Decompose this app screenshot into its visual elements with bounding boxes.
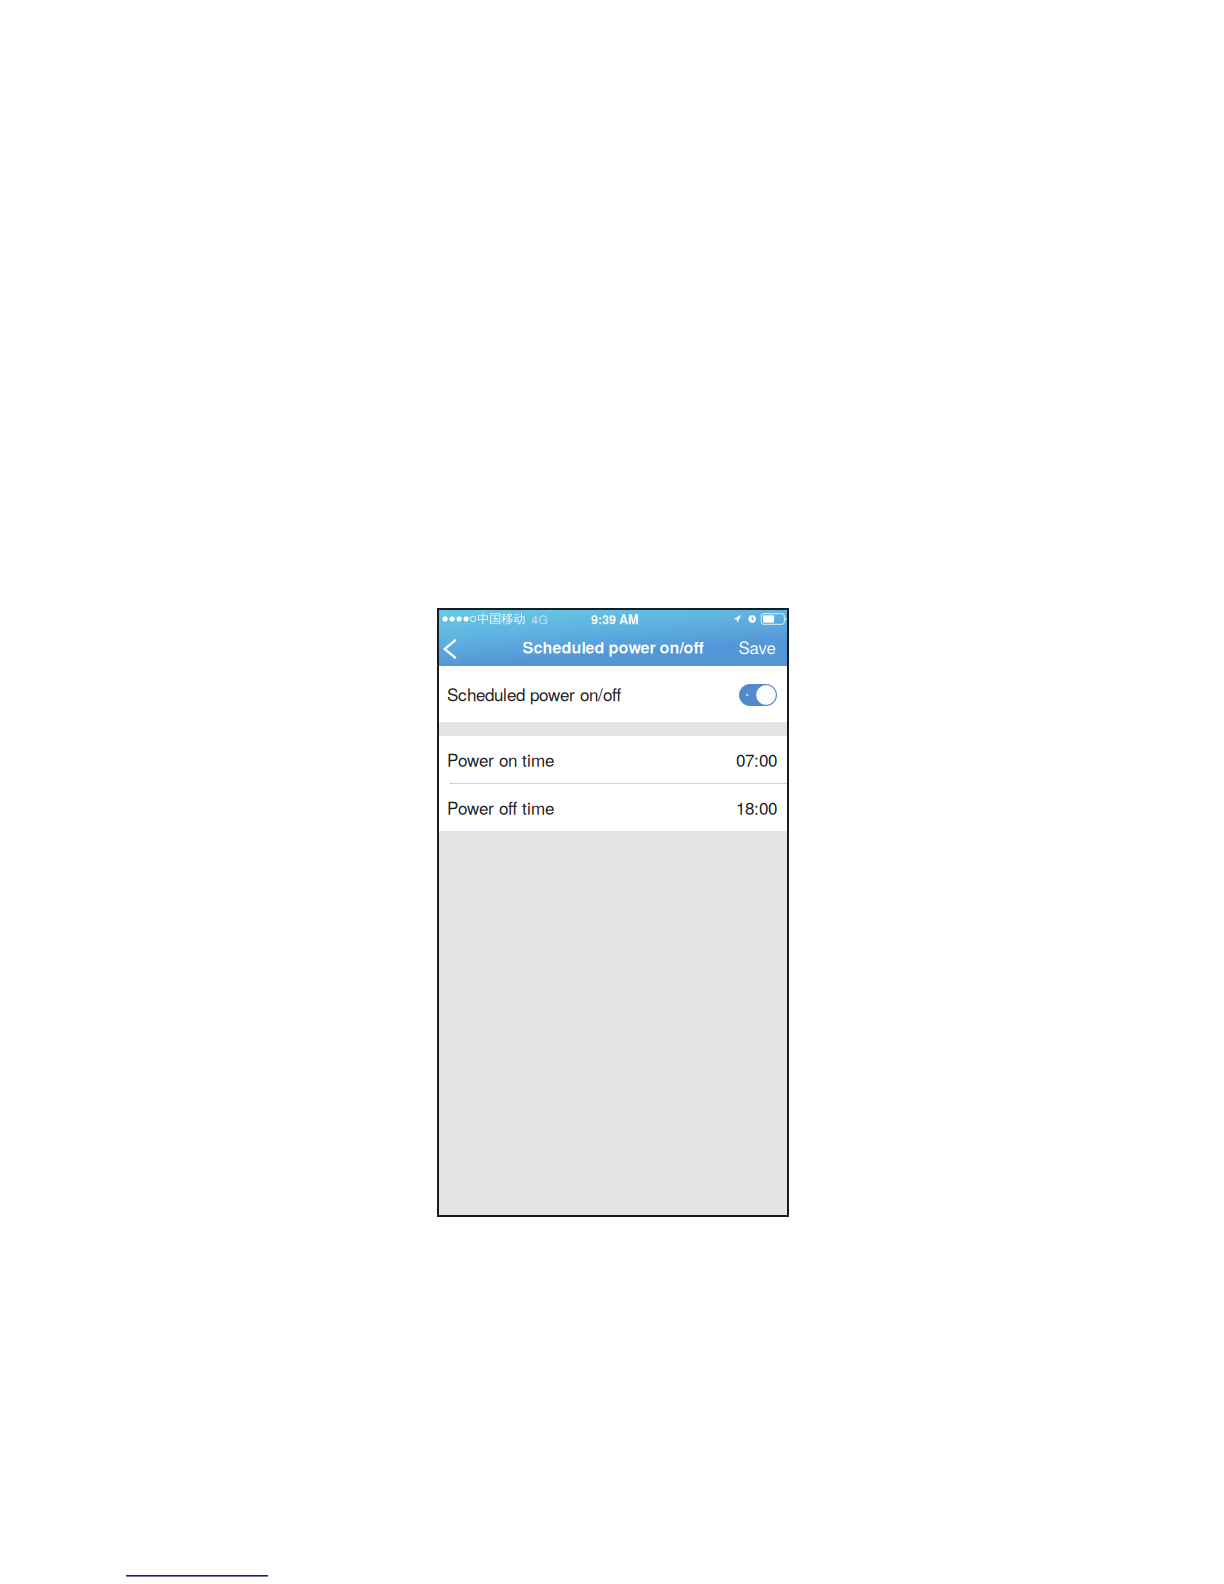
staticText: 07:00: [736, 747, 777, 772]
staticText: Scheduled power on/off: [522, 635, 703, 658]
button[interactable]: Power on time: [439, 736, 787, 783]
staticText: Save: [738, 635, 775, 659]
button[interactable]: Power off time: [439, 784, 787, 831]
staticText: Power on time: [447, 747, 554, 772]
button[interactable]: Scheduled power on/off: [439, 666, 787, 722]
staticText: Power off time: [447, 795, 554, 820]
staticText: 中国移动: [477, 611, 525, 627]
button[interactable]: Back: [439, 628, 461, 666]
staticText: 4G: [531, 610, 548, 628]
staticText: 18:00: [736, 795, 777, 820]
button[interactable]: Save: [727, 628, 787, 666]
staticText: 9:39 AM: [591, 610, 638, 628]
staticText: Scheduled power on/off: [447, 682, 621, 706]
